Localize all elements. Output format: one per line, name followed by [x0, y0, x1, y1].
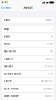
button[interactable]: Songs: [2, 26, 54, 33]
staticText: Carrier: [4, 80, 12, 83]
staticText: Applications: [4, 50, 16, 53]
staticText: F2LW48XYZ: [43, 87, 53, 90]
button[interactable]: Serial Number: [2, 85, 54, 92]
button[interactable]: Name: [2, 17, 54, 23]
staticText: 136: [50, 50, 53, 53]
staticText: Serial Number: [4, 87, 19, 90]
staticText: 17.4.1: [48, 73, 53, 75]
staticText: 12,435: [47, 43, 53, 45]
button[interactable]: Available: [2, 63, 54, 70]
staticText: Name: [4, 19, 10, 21]
staticText: Photos: [4, 43, 10, 45]
staticText: Verizon 52.0: [41, 80, 53, 83]
staticText: Model Number: [4, 95, 19, 97]
staticText: Available: [4, 65, 13, 68]
staticText: 24.4 GB: [45, 65, 53, 68]
button[interactable]: Photos: [2, 40, 54, 48]
staticText: Capacity: [4, 58, 13, 60]
button[interactable]: Software Version: [2, 70, 54, 77]
staticText: MQ9U3: [45, 95, 53, 97]
button[interactable]: Capacity: [2, 55, 54, 63]
button[interactable]: Model Number: [2, 93, 54, 100]
button[interactable]: General: [0, 5, 12, 11]
staticText: About: [23, 6, 32, 9]
staticText: 9:41: [2, 1, 8, 4]
staticText: General: [3, 6, 11, 9]
staticText: Songs: [4, 28, 9, 30]
button[interactable]: Carrier: [2, 78, 54, 85]
staticText: iPhone: [45, 19, 51, 21]
staticText: Software Version: [4, 73, 21, 75]
staticText: Videos: [4, 35, 10, 38]
staticText: 29: [51, 35, 53, 38]
button[interactable]: Videos: [2, 33, 54, 40]
staticText: 128 GB: [46, 58, 53, 60]
button[interactable]: Applications: [2, 48, 54, 55]
